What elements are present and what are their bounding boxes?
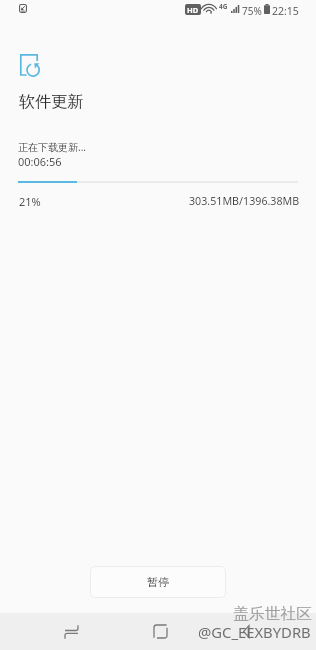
staticText: 正在下载更新... [18,140,87,154]
staticText: 75% [242,4,262,18]
button[interactable]: Recents [27,613,115,650]
staticText: 303.51MB/1396.38MB [189,194,300,209]
staticText: 软件更新 [19,92,83,112]
staticText: 4G [219,2,228,11]
staticText: 00:06:56 [18,154,62,169]
button[interactable]: 暂停 [90,566,226,598]
button[interactable]: Home [116,613,204,650]
staticText: HD [187,5,199,15]
button[interactable]: Back [202,613,290,650]
staticText: 21% [19,194,41,209]
staticText: 盖乐世社区 [233,604,312,624]
staticText: 22:15 [272,4,299,18]
staticText: 暂停 [147,575,169,589]
staticText: @GC_EEXBYDRB [198,622,311,642]
